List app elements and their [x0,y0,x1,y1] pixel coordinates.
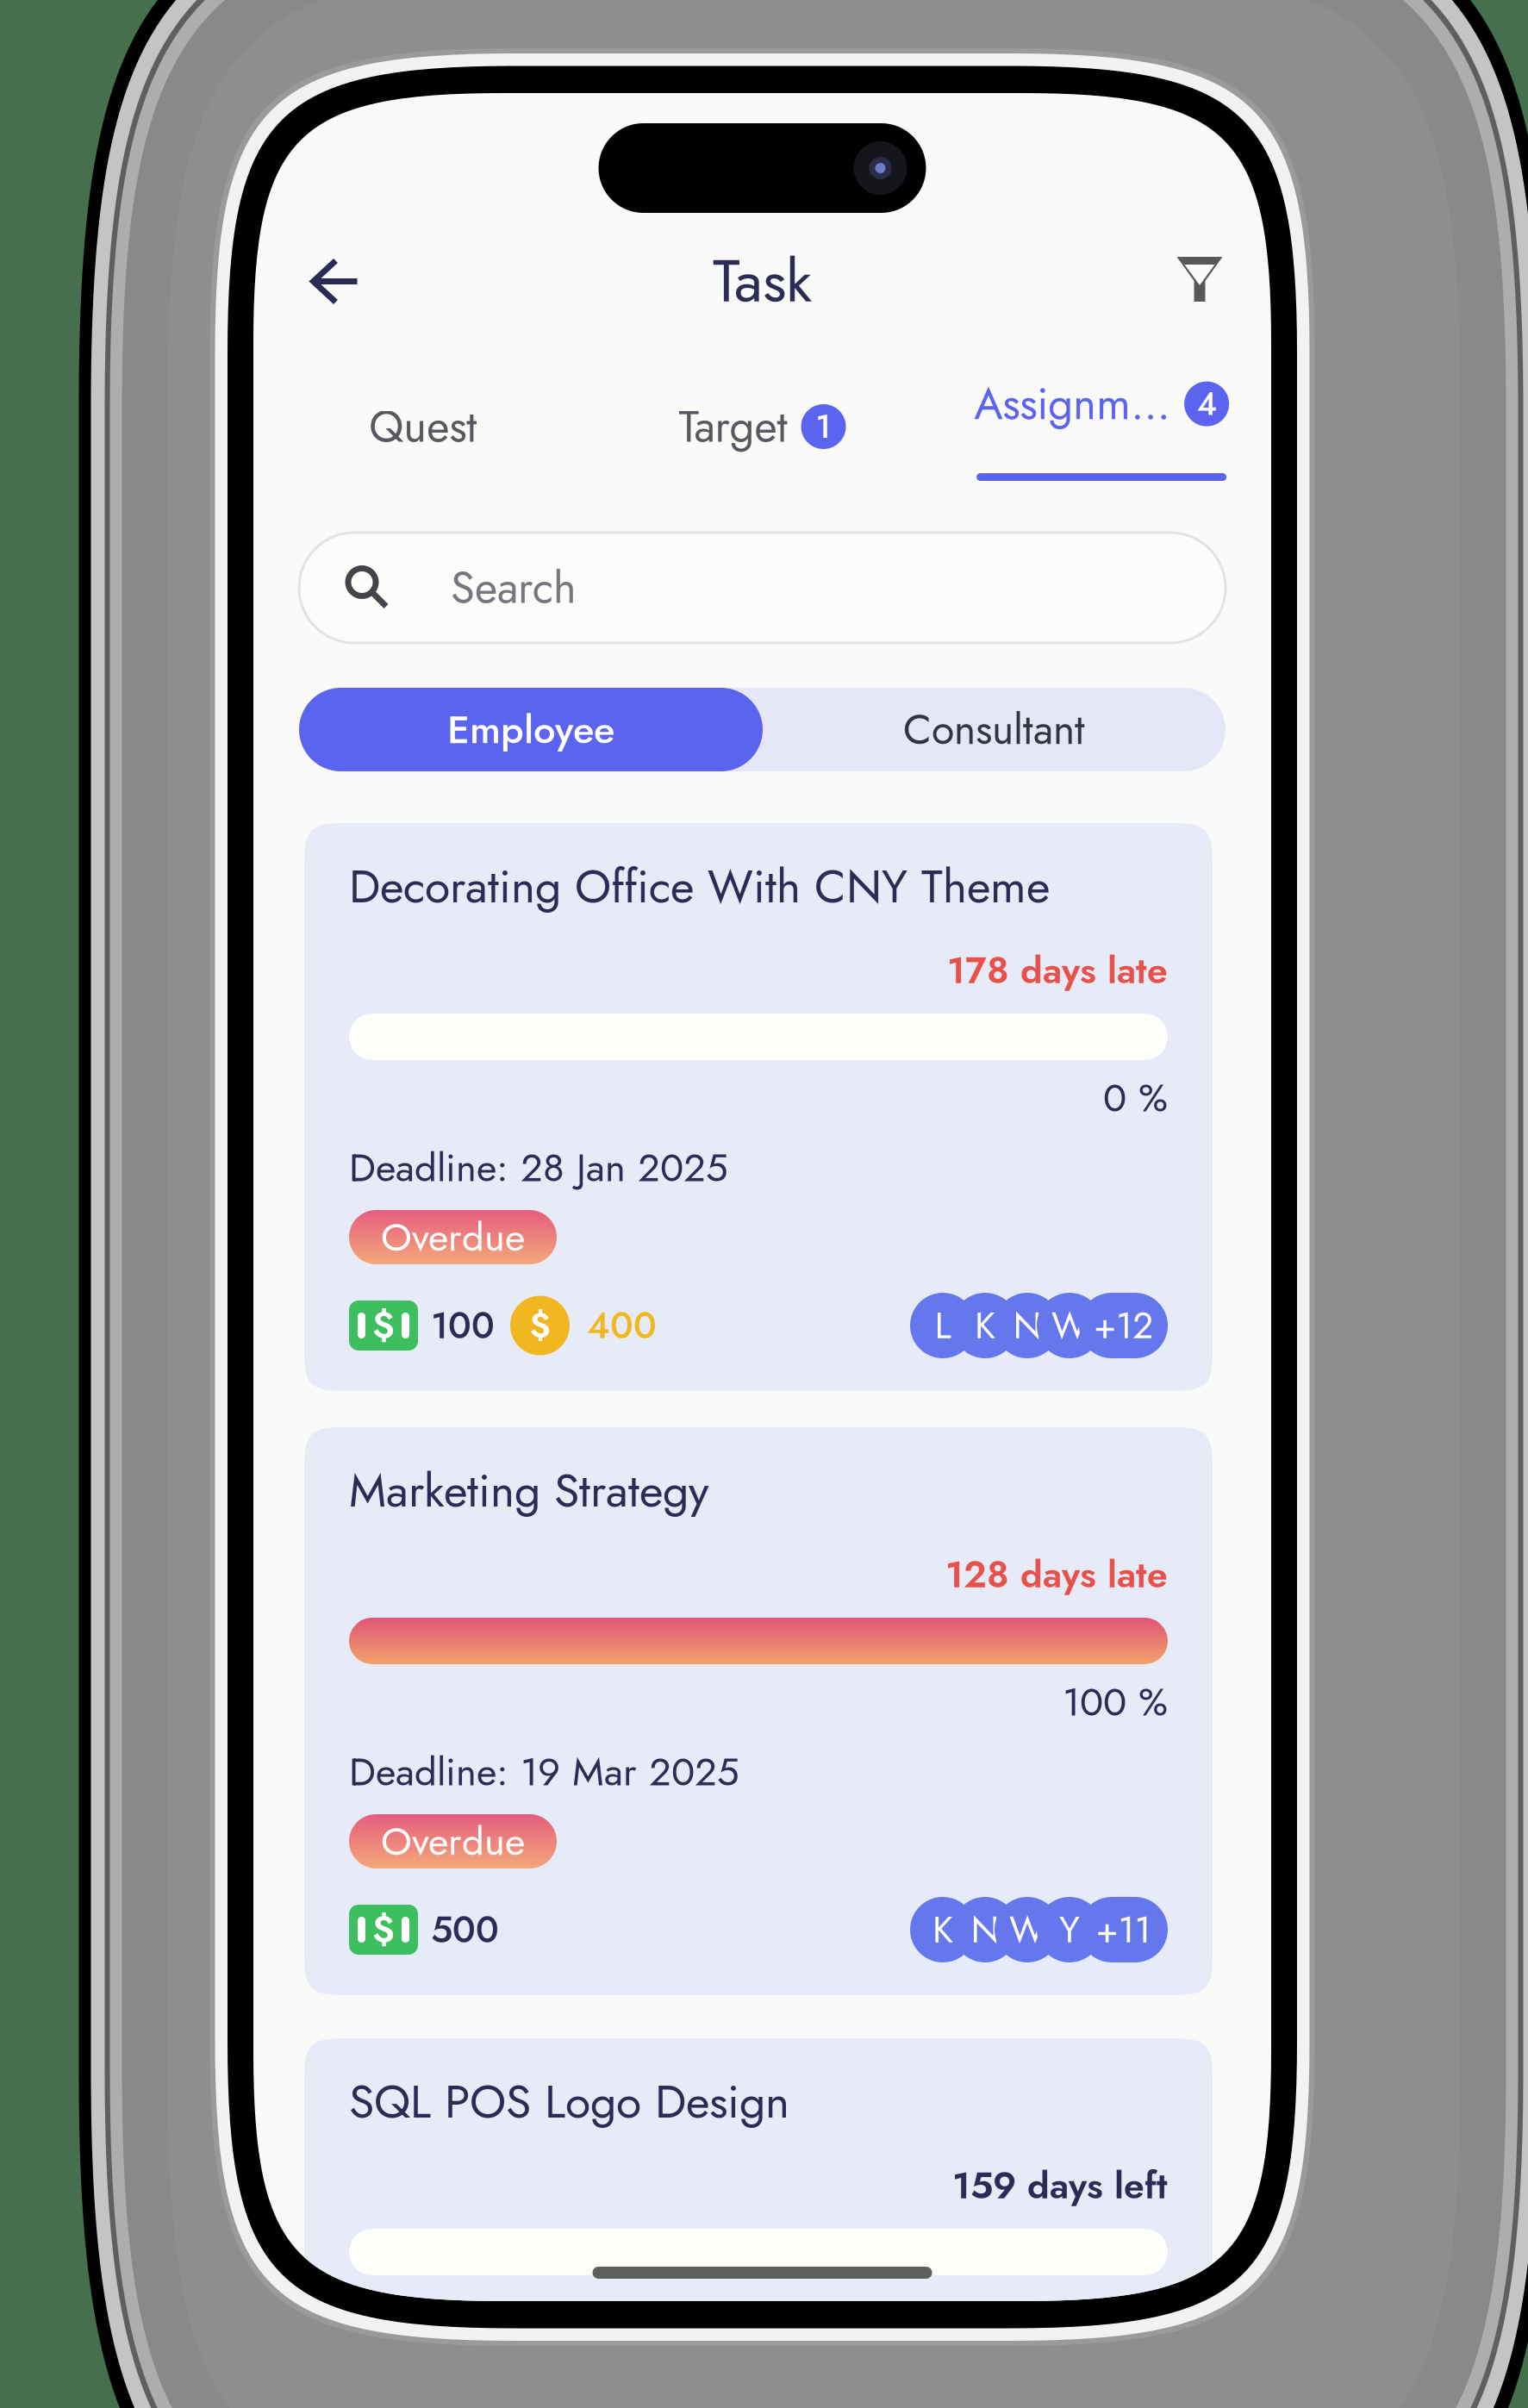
button[interactable]: Filter [1147,234,1252,325]
staticText: N [971,1903,999,1956]
button[interactable]: Assignm… [932,371,1271,483]
staticText: 4 [1197,381,1217,427]
staticText: Quest [369,395,477,458]
staticText: W [1051,1299,1088,1352]
staticText: 178 days late [947,944,1168,997]
staticText: Task [713,239,812,323]
staticText: +12 [1094,1299,1153,1352]
staticText: Deadline: 28 Jan 2025 [349,1139,728,1196]
staticText: 100 % [1063,1674,1168,1730]
staticText: K [975,1299,995,1352]
staticText: Assignm… [974,372,1171,435]
staticText: Overdue [381,1209,525,1265]
staticText: Employee [447,701,614,758]
staticText: $ [372,1903,395,1956]
button[interactable]: Marketing Strategy [304,1427,1213,1995]
staticText: Y [1059,1903,1080,1956]
button[interactable]: Back [283,236,388,328]
staticText: Marketing Strategy [349,1457,708,1524]
staticText: Decorating Office With CNY Theme [349,853,1050,920]
staticText: 100 [431,1299,495,1352]
button[interactable]: Consultant [763,688,1226,771]
staticText: $ [530,1301,550,1350]
staticText: 159 days left [952,2159,1168,2212]
staticText: +11 [1096,1903,1151,1956]
staticText: K [932,1903,953,1956]
staticText: Overdue [381,1813,525,1870]
staticText: Deadline: 19 Mar 2025 [349,1744,739,1800]
staticText: 128 days late [945,1548,1168,1601]
staticText: Search [451,556,577,619]
staticText: Target [679,395,787,458]
staticText: 0 % [1103,1070,1168,1126]
staticText: 1 [816,403,831,450]
button[interactable]: Target [593,371,932,483]
staticText: SQL POS Logo Design [349,2068,789,2135]
staticText: L [935,1299,951,1352]
staticText: N [1013,1299,1042,1352]
button[interactable]: Decorating Office With CNY Theme [304,823,1213,1391]
staticText: Consultant [903,700,1085,759]
button[interactable]: Employee [299,688,763,771]
button[interactable]: Quest [253,371,593,483]
button[interactable]: SQL POS Logo Design [304,2038,1213,2400]
staticText: W [1009,1903,1045,1956]
staticText: 500 [431,1903,499,1956]
staticText: $ [372,1299,395,1352]
staticText: 400 [587,1299,657,1352]
